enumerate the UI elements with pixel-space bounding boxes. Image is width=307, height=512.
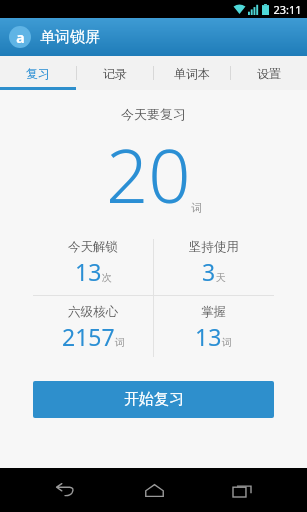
staticText: 词 (191, 201, 202, 215)
button[interactable]: 掌握 (153, 304, 274, 352)
button[interactable]: 今天解锁 (33, 239, 153, 287)
button[interactable]: 单词本 (153, 56, 230, 90)
staticText: 坚持使用 (189, 239, 239, 255)
staticText: 2157 (62, 321, 115, 352)
button[interactable]: 六级核心 (33, 304, 153, 352)
staticText: 今天解锁 (68, 239, 118, 255)
staticText: a (16, 28, 25, 47)
button[interactable]: 坚持使用 (153, 239, 274, 287)
staticText: 词 (222, 336, 232, 349)
staticText: 六级核心 (68, 304, 118, 320)
staticText: 复习 (26, 66, 50, 81)
staticText: 天 (216, 271, 226, 284)
staticText: 记录 (103, 66, 127, 81)
staticText: 词 (115, 336, 125, 349)
staticText: 3 (202, 256, 216, 287)
button[interactable]: Home (131, 468, 177, 512)
button[interactable]: 复习 (0, 56, 76, 90)
button[interactable]: 设置 (230, 56, 307, 90)
button[interactable]: 开始复习 (33, 381, 274, 418)
staticText: 单词锁屏 (40, 28, 100, 47)
staticText: 13 (75, 256, 102, 287)
staticText: 掌握 (201, 304, 226, 320)
staticText: 20 (106, 124, 191, 225)
staticText: 开始复习 (124, 390, 184, 409)
staticText: 今天要复习 (0, 106, 307, 122)
staticText: 次 (102, 271, 112, 284)
staticText: 单词本 (174, 66, 210, 81)
button[interactable]: Back (42, 468, 88, 512)
button[interactable]: Recent apps (219, 468, 265, 512)
button[interactable]: 记录 (76, 56, 153, 90)
staticText: 13 (195, 321, 222, 352)
staticText: 设置 (257, 66, 281, 81)
staticText: 23:11 (273, 2, 302, 17)
